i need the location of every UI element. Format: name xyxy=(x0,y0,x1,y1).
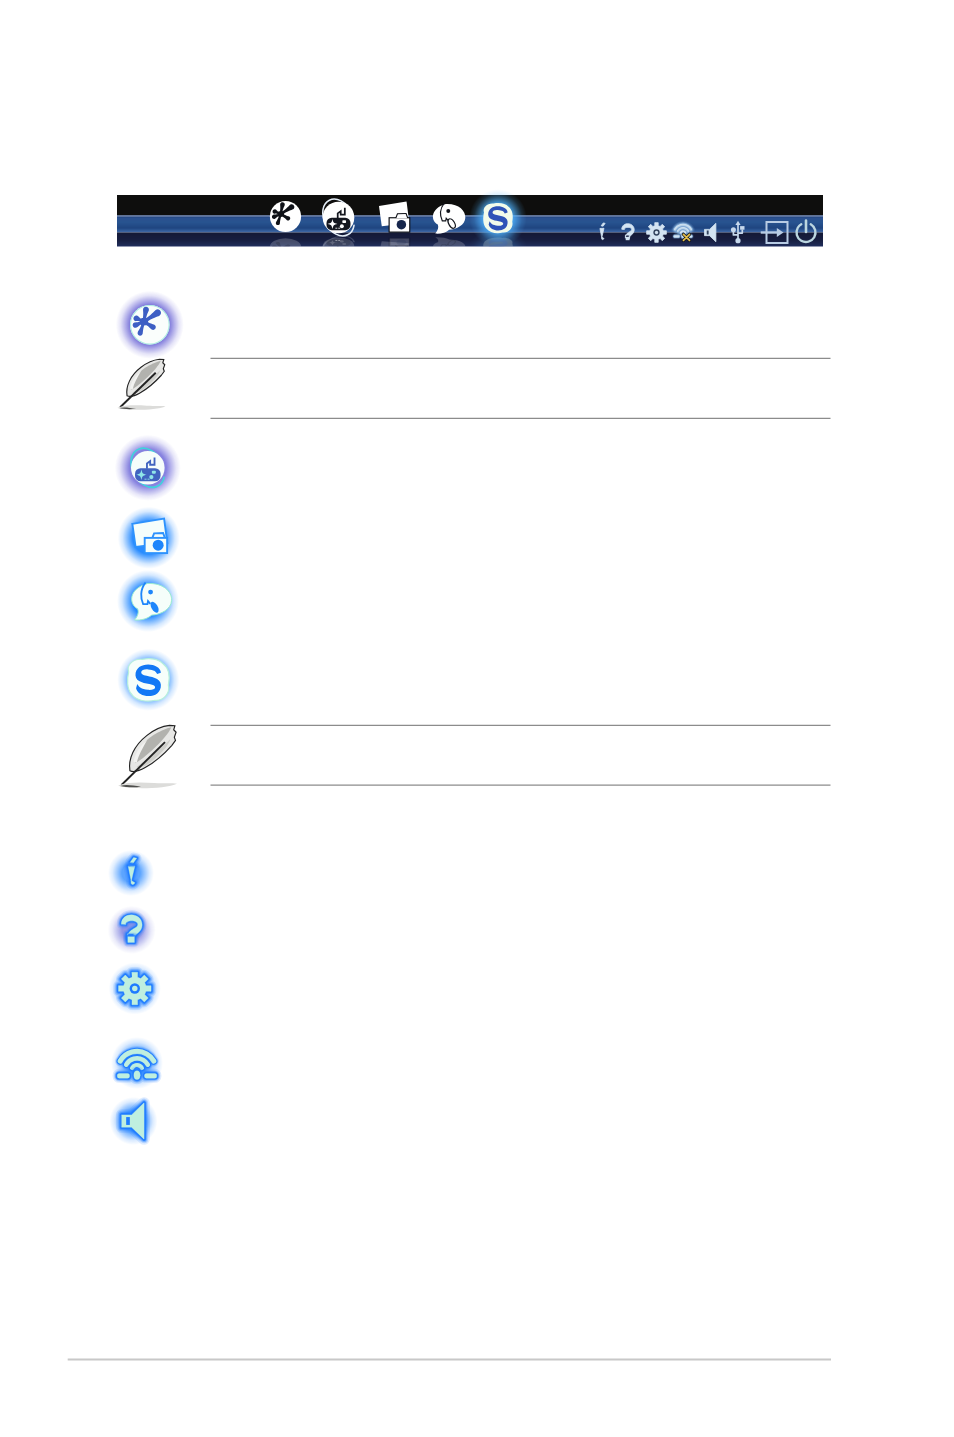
button[interactable]: Information xyxy=(592,218,612,246)
button[interactable]: Screen capture xyxy=(116,506,832,568)
button[interactable]: Volume xyxy=(699,218,723,246)
button[interactable]: Volume xyxy=(110,1098,160,1146)
button[interactable]: Information xyxy=(110,850,158,898)
button[interactable]: Help xyxy=(618,218,640,246)
button[interactable]: Wireless network xyxy=(110,1040,164,1088)
button[interactable]: Note xyxy=(116,722,832,788)
button[interactable]: Log off xyxy=(764,218,790,246)
button[interactable]: Wireless network disabled xyxy=(671,218,697,246)
button[interactable]: Voice chat xyxy=(429,198,465,238)
button[interactable]: Note xyxy=(116,356,832,418)
button[interactable]: ASUS Splendid utility xyxy=(268,198,304,238)
button[interactable]: Voice chat xyxy=(116,572,832,634)
button[interactable]: Skype xyxy=(481,198,517,238)
button[interactable]: Screen capture xyxy=(375,198,413,238)
button[interactable]: Settings xyxy=(110,964,160,1014)
button[interactable]: Help xyxy=(110,906,158,954)
button[interactable]: Settings xyxy=(645,218,669,246)
button[interactable]: Game launcher xyxy=(116,436,832,500)
button[interactable]: Power xyxy=(793,218,819,246)
button[interactable]: USB devices xyxy=(726,216,750,246)
button[interactable]: Game launcher xyxy=(321,198,357,238)
button[interactable]: Splendid video enhancement xyxy=(116,293,832,355)
button[interactable]: Skype xyxy=(116,650,832,712)
